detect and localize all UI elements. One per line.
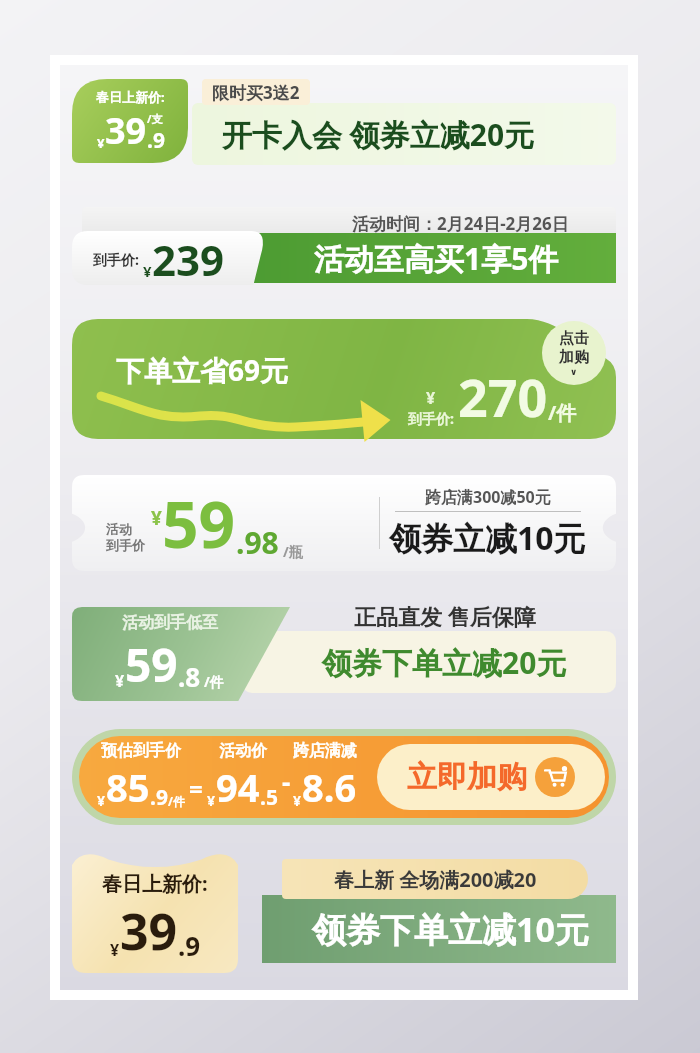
staticText: 85 [106, 761, 150, 813]
button[interactable]: 点击加购 [542, 321, 606, 385]
staticText: 270 [458, 361, 548, 432]
staticText: 开卡入会 领券立减20元 [222, 114, 535, 155]
staticText: ¥ [115, 670, 125, 692]
staticText: 94 [216, 761, 260, 813]
button[interactable]: 下单立省69元 [72, 319, 616, 447]
staticText: 到手价: [93, 250, 139, 269]
staticText: 239 [152, 231, 225, 285]
staticText: ¥ [143, 261, 152, 281]
staticText: 正品直发 售后保障 [354, 601, 536, 631]
staticText: 39 [120, 897, 178, 965]
staticText: ∨ [570, 367, 578, 377]
staticText: /件 [548, 399, 577, 426]
staticText: 春日上新价: [102, 870, 208, 897]
button[interactable]: 预估到手价 [79, 736, 609, 818]
staticText: .9 [178, 928, 201, 963]
staticText: .8 [178, 659, 201, 694]
staticText: 预估到手价 [101, 741, 181, 761]
staticText: 领券下单立减20元 [322, 642, 567, 683]
staticText: 到手价 [106, 537, 145, 553]
staticText: /支 [147, 111, 163, 126]
staticText: .9 [147, 126, 165, 155]
staticText: /件 [204, 672, 224, 691]
button[interactable]: 立即加购 [377, 744, 605, 810]
staticText: 领券下单立减10元 [312, 906, 589, 952]
staticText: 活动价 [219, 741, 267, 761]
staticText: 活动 [106, 521, 132, 537]
staticText: /件 [168, 793, 185, 809]
staticText: 59 [125, 633, 178, 696]
staticText: 限时买3送2 [212, 81, 300, 104]
staticText: = [189, 772, 203, 805]
staticText: 59 [162, 480, 236, 567]
staticText: 春日上新价: [96, 88, 165, 106]
staticText: 加购 [559, 348, 589, 367]
staticText: 到手价: [408, 409, 454, 428]
staticText: 活动到手低至 [122, 613, 218, 633]
button[interactable]: 活动至高买1享5件 [72, 201, 616, 289]
staticText: 下单立省69元 [116, 351, 289, 389]
staticText: 活动至高买1享5件 [314, 238, 559, 279]
staticText: 8.6 [302, 761, 357, 813]
staticText: /瓶 [283, 542, 303, 561]
staticText: ¥ [207, 791, 216, 810]
staticText: ¥ [151, 505, 162, 531]
staticText: 点击 [559, 329, 589, 348]
staticText: .5 [260, 783, 278, 812]
button[interactable]: 领券下单立减10元 [72, 847, 616, 975]
staticText: - [282, 764, 291, 799]
staticText: 立即加购 [407, 758, 527, 796]
staticText: 跨店满300减50元 [425, 486, 551, 508]
staticText: 跨店满减 [293, 741, 357, 761]
staticText: 活动时间：2月24日-2月26日 [352, 212, 569, 235]
button[interactable]: 领券下单立减20元 [72, 597, 616, 701]
staticText: .9 [150, 783, 168, 812]
staticText: ¥ [293, 791, 302, 810]
staticText: 39 [105, 106, 147, 155]
staticText: ¥ [426, 387, 436, 409]
staticText: ¥ [97, 134, 105, 152]
staticText: .98 [236, 522, 279, 563]
staticText: 领券立减10元 [389, 516, 586, 560]
button[interactable]: 开卡入会 领券立减20元 [72, 79, 616, 165]
staticText: ¥ [97, 791, 106, 810]
staticText: 春上新 全场满200减20 [334, 866, 537, 893]
staticText: ¥ [110, 939, 120, 961]
button[interactable]: 活动 [72, 475, 616, 571]
